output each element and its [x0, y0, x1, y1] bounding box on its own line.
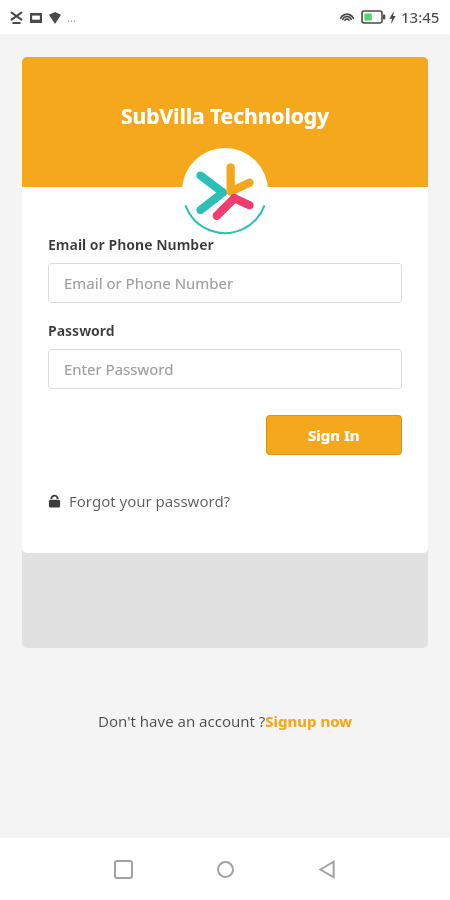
button[interactable]: Don't have an account ?Signup now — [92, 705, 359, 737]
staticText: 13:45 — [401, 7, 440, 27]
staticText: Forgot your password? — [69, 491, 231, 511]
staticText: Sign In — [308, 425, 360, 445]
staticText: Email or Phone Number — [64, 273, 234, 293]
button[interactable]: Sign In — [266, 415, 402, 455]
button[interactable]: Recents — [96, 842, 150, 896]
button[interactable]: Home — [198, 842, 252, 896]
staticText: Enter Password — [64, 359, 174, 379]
button[interactable]: Back — [300, 842, 354, 896]
staticText: Don't have an account ?Signup now — [98, 711, 353, 731]
button[interactable]: Email or Phone Number — [48, 263, 402, 303]
button[interactable]: Forgot your password? — [48, 491, 231, 511]
staticText: Email or Phone Number — [48, 235, 214, 254]
button[interactable]: Enter Password — [48, 349, 402, 389]
staticText: SubVilla Technology — [121, 102, 330, 131]
staticText: ... — [67, 10, 76, 25]
staticText: Password — [48, 321, 115, 340]
